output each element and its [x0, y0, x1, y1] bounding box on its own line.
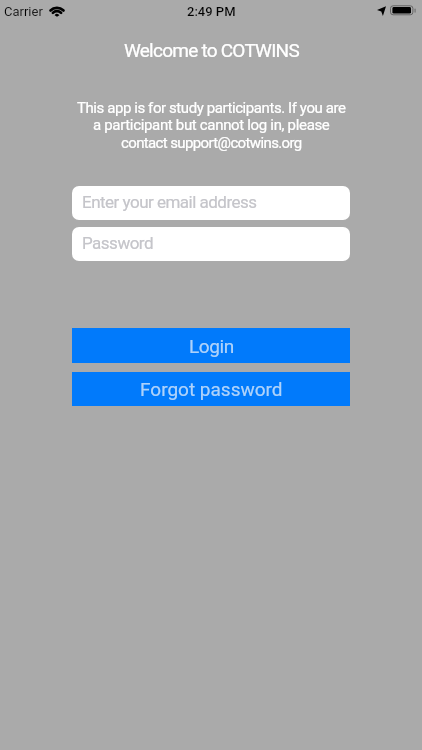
button[interactable]: Login	[72, 328, 350, 363]
staticText: 2:49 PM	[187, 4, 236, 19]
staticText: This app is for study participants. If y…	[77, 99, 346, 117]
staticText: Welcome to COTWINS	[124, 39, 299, 61]
staticText: Password	[82, 233, 154, 253]
button[interactable]: Password	[72, 227, 350, 261]
staticText: Carrier	[4, 4, 43, 19]
staticText: Enter your email address	[82, 192, 257, 212]
staticText: contact support@cotwins.org	[121, 134, 302, 152]
staticText: a participant but cannot log in, please	[93, 116, 330, 134]
staticText: Login	[189, 335, 234, 357]
button[interactable]: Enter your email address	[72, 186, 350, 220]
staticText: Forgot password	[140, 378, 283, 400]
button[interactable]: Forgot password	[72, 372, 350, 406]
